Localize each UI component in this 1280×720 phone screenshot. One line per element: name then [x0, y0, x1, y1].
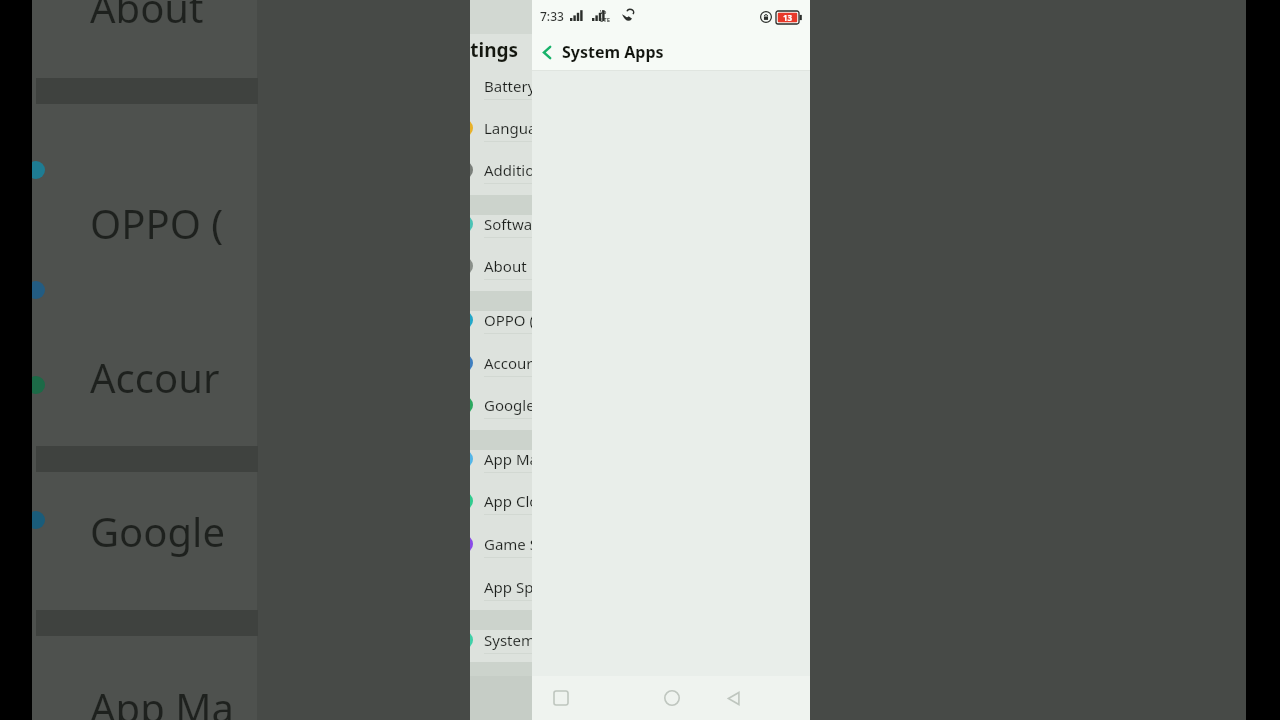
staticText: System: [484, 630, 532, 650]
staticText: App Clo: [484, 491, 532, 511]
button[interactable]: Google: [470, 384, 532, 426]
staticText: About: [90, 0, 214, 34]
staticText: Vo: [600, 9, 607, 16]
staticText: App Sp: [484, 577, 532, 597]
staticText: 13: [783, 12, 793, 23]
button[interactable]: Game S: [470, 523, 532, 565]
button[interactable]: Back: [706, 676, 760, 720]
staticText: App Ma: [484, 449, 532, 469]
staticText: Additio: [484, 160, 532, 180]
staticText: OPPO (: [90, 196, 224, 250]
staticText: Google: [484, 395, 532, 415]
staticText: System Apps: [562, 41, 664, 63]
staticText: OPPO (: [484, 310, 532, 330]
button[interactable]: About: [470, 245, 532, 287]
staticText: Accour: [484, 353, 532, 373]
staticText: Accour: [90, 350, 220, 404]
staticText: LTE: [600, 16, 611, 24]
staticText: Google: [90, 504, 225, 558]
button[interactable]: Home: [645, 676, 699, 720]
button[interactable]: Accour: [470, 342, 532, 384]
button[interactable]: App Ma: [470, 438, 532, 480]
button[interactable]: Recent apps: [534, 676, 588, 720]
staticText: 7:33: [540, 8, 564, 24]
staticText: About: [484, 256, 531, 276]
button[interactable]: System: [470, 619, 532, 661]
staticText: Battery: [484, 76, 532, 96]
staticText: App Ma: [90, 680, 234, 720]
staticText: ttings: [470, 37, 519, 63]
staticText: Langua: [484, 118, 532, 138]
button[interactable]: Additio: [470, 149, 532, 191]
button[interactable]: Langua: [470, 107, 532, 149]
staticText: Softwa: [484, 214, 532, 234]
button[interactable]: App Clo: [470, 480, 532, 522]
button[interactable]: Back: [532, 34, 562, 70]
button[interactable]: App Sp: [470, 566, 532, 608]
staticText: Game S: [484, 534, 532, 554]
button[interactable]: Battery: [470, 65, 532, 107]
button[interactable]: OPPO (: [470, 299, 532, 341]
button[interactable]: Softwa: [470, 203, 532, 245]
